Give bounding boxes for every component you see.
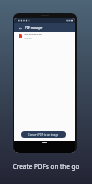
staticText: New document.pdf xyxy=(24,33,42,36)
staticText: PDF manager xyxy=(25,26,43,30)
staticText: Convert PDF to an image xyxy=(28,133,59,137)
button[interactable]: New document.pdf xyxy=(14,32,75,40)
button[interactable]: Back xyxy=(17,25,23,31)
button[interactable]: Convert PDF to an image xyxy=(21,131,66,138)
staticText: Create PDFs on the go xyxy=(0,162,92,171)
staticText: 12:45 PM xyxy=(24,37,32,39)
